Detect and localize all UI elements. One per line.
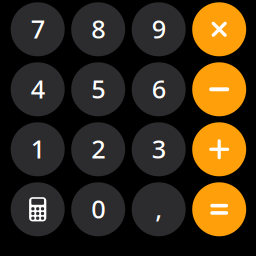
staticText: 9 (152, 12, 166, 45)
button[interactable]: 9 (132, 2, 186, 56)
staticText: 8 (91, 12, 105, 45)
staticText: 6 (152, 72, 166, 105)
staticText: 5 (91, 72, 105, 105)
button[interactable]: Add (192, 122, 246, 176)
button[interactable]: 2 (71, 122, 125, 176)
button[interactable]: Calculator (11, 182, 65, 236)
button[interactable]: 8 (71, 2, 125, 56)
staticText: 2 (91, 132, 105, 165)
button[interactable]: 5 (71, 62, 125, 116)
staticText: 7 (31, 12, 45, 45)
button[interactable]: 3 (132, 122, 186, 176)
button[interactable]: Subtract (192, 62, 246, 116)
staticText: 3 (152, 132, 166, 165)
staticText: , (155, 192, 162, 225)
button[interactable]: Equals (192, 182, 246, 236)
button[interactable]: 7 (11, 2, 65, 56)
staticText: 1 (31, 132, 45, 165)
staticText: 0 (91, 192, 105, 225)
button[interactable]: 1 (11, 122, 65, 176)
button[interactable]: 6 (132, 62, 186, 116)
button[interactable]: , (132, 182, 186, 236)
button[interactable]: Multiply (192, 2, 246, 56)
button[interactable]: 0 (71, 182, 125, 236)
button[interactable]: 4 (11, 62, 65, 116)
staticText: 4 (31, 72, 45, 105)
